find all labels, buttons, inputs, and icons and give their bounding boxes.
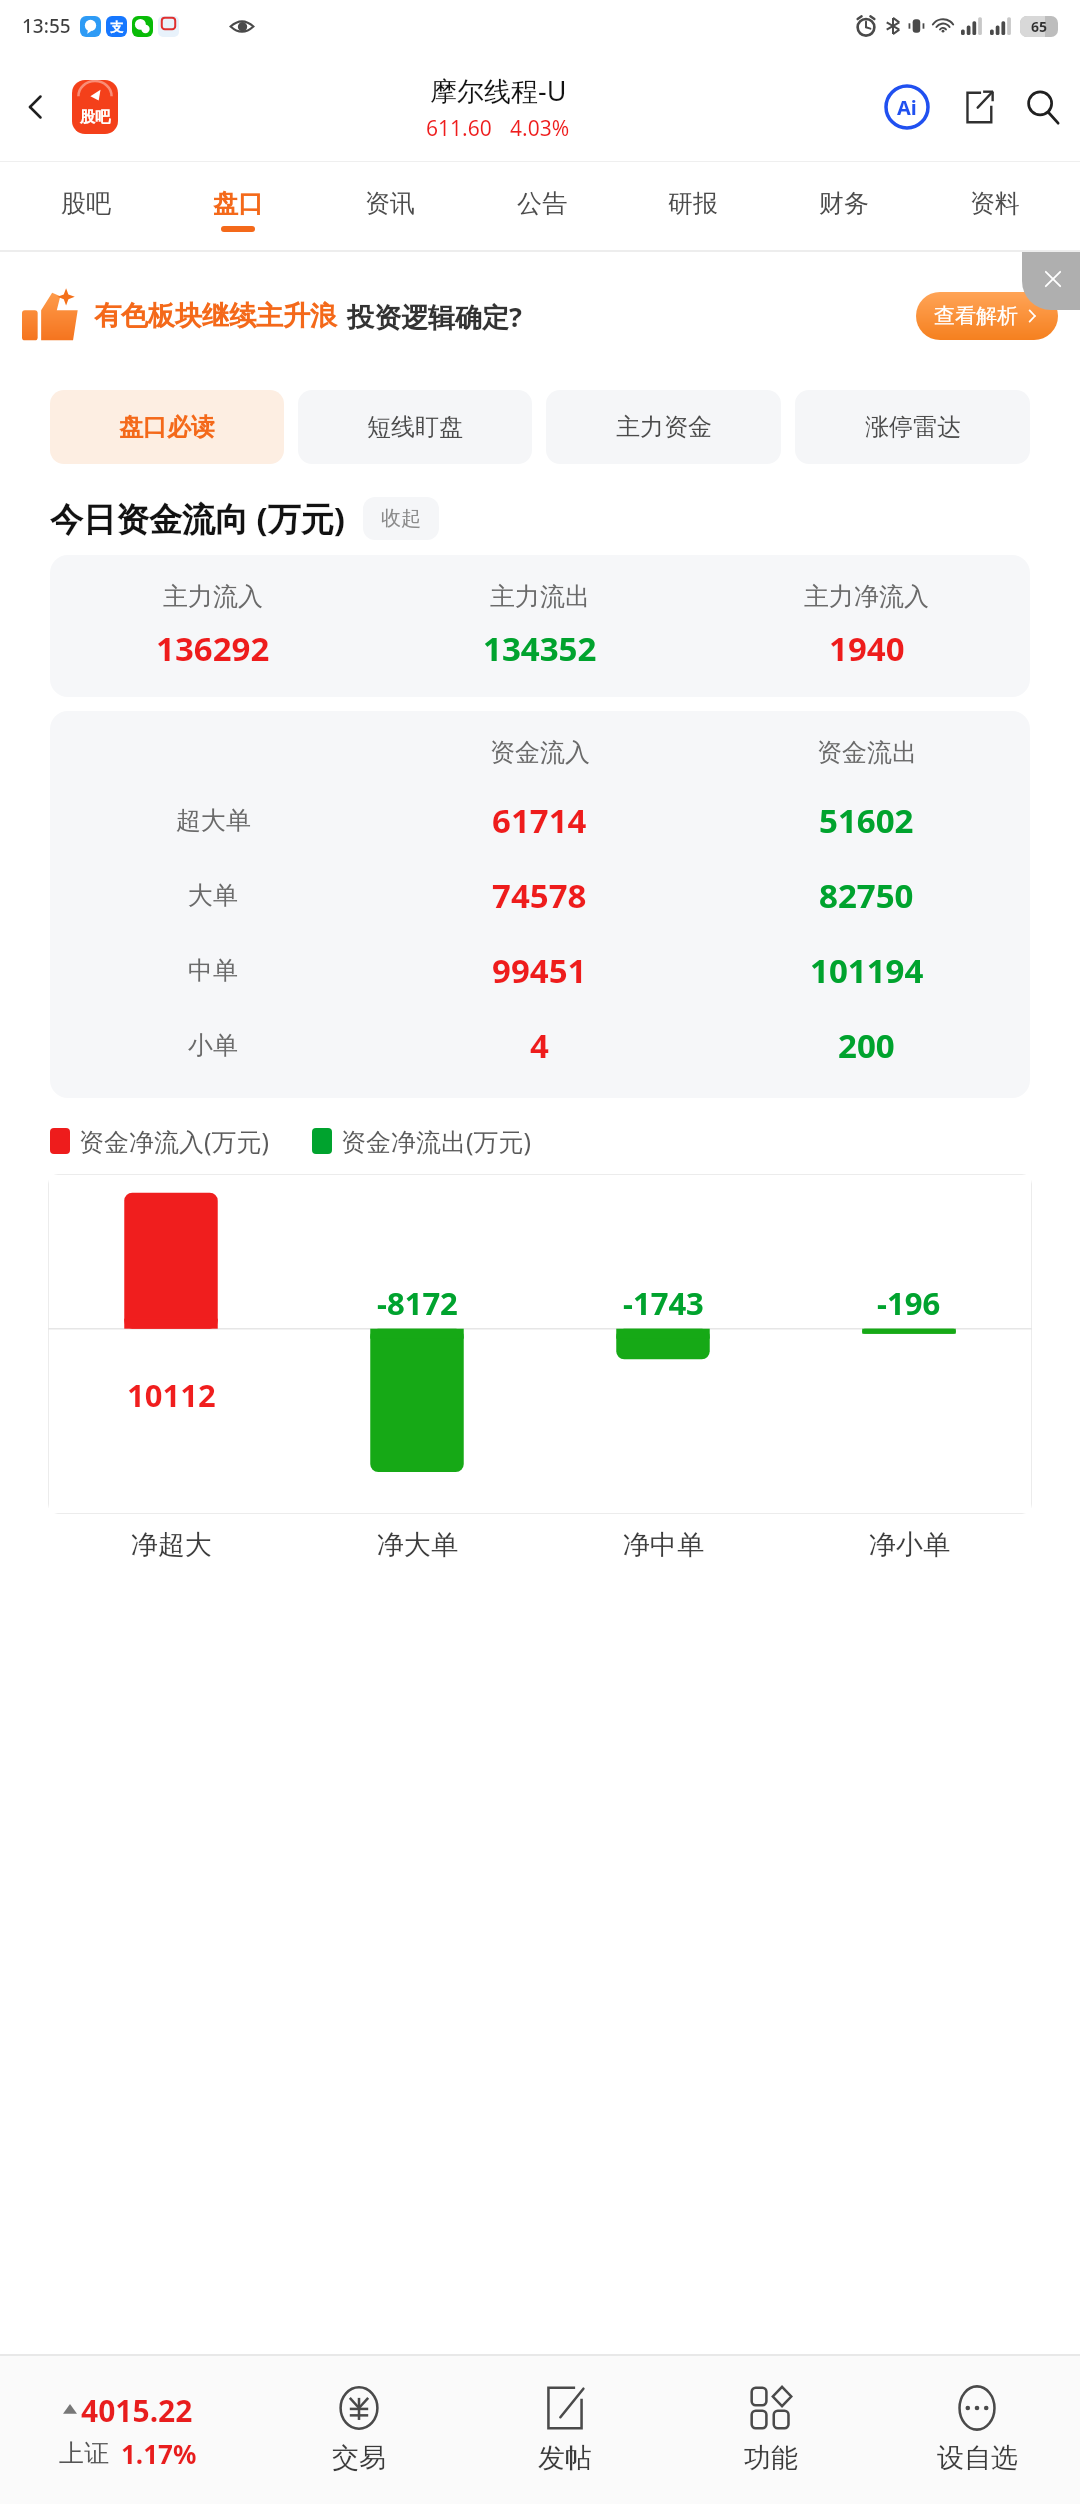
- staticText: 小单: [188, 1030, 238, 1061]
- staticText: 资金流入: [490, 737, 590, 768]
- staticText: 主力资金: [616, 412, 712, 442]
- staticText: 今日资金流向 (万元): [50, 496, 345, 541]
- staticText: 主力流出: [490, 581, 590, 612]
- staticText: 净大单: [377, 1528, 458, 1562]
- staticText: 研报: [668, 188, 718, 219]
- button[interactable]: 股吧: [72, 80, 118, 134]
- staticText: 10112: [127, 1374, 216, 1416]
- staticText: 134352: [483, 626, 597, 671]
- staticText: 短线盯盘: [367, 412, 463, 442]
- staticText: 收起: [381, 506, 421, 531]
- staticText: 财务: [819, 188, 869, 219]
- button[interactable]: 收起: [363, 497, 439, 540]
- staticText: 摩尔线程-U: [430, 72, 567, 109]
- staticText: 61714: [492, 798, 587, 843]
- staticText: 股吧: [80, 108, 110, 127]
- staticText: 611.60: [426, 114, 492, 143]
- button[interactable]: AI: [878, 78, 936, 136]
- staticText: 功能: [744, 2441, 798, 2475]
- staticText: 交易: [332, 2441, 386, 2475]
- staticText: 1940: [829, 626, 905, 671]
- staticText: 65: [1031, 17, 1048, 36]
- staticText: 设自选: [937, 2441, 1018, 2475]
- staticText: 发帖: [538, 2441, 592, 2475]
- staticText: 盘口必读: [119, 412, 215, 442]
- staticText: 200: [838, 1023, 895, 1068]
- button[interactable]: 功能: [668, 2356, 874, 2504]
- button[interactable]: 发帖: [462, 2356, 668, 2504]
- staticText: 主力流入: [163, 581, 263, 612]
- button[interactable]: 主力流入: [50, 555, 1030, 697]
- staticText: 主力净流入: [804, 581, 929, 612]
- staticText: 74578: [492, 873, 587, 918]
- button[interactable]: 财务: [768, 162, 919, 252]
- button[interactable]: 交易: [256, 2356, 462, 2504]
- button[interactable]: 涨停雷达: [795, 390, 1030, 464]
- staticText: 支: [110, 19, 123, 35]
- staticText: 有色板块继续主升浪: [94, 299, 337, 333]
- button[interactable]: 盘口必读: [50, 390, 284, 464]
- staticText: 上证: [59, 2438, 109, 2469]
- button[interactable]: 设自选: [874, 2356, 1080, 2504]
- button[interactable]: Close: [1022, 252, 1080, 310]
- staticText: 82750: [819, 873, 914, 918]
- button[interactable]: 公告: [466, 162, 617, 252]
- staticText: 资金净流入(万元): [79, 1124, 270, 1158]
- button[interactable]: 盘口: [162, 162, 314, 252]
- staticText: -8172: [377, 1282, 458, 1324]
- staticText: 大单: [188, 880, 238, 911]
- staticText: 13:55: [22, 13, 71, 39]
- button[interactable]: 股吧: [10, 162, 162, 252]
- staticText: 4015.22: [81, 2390, 193, 2431]
- staticText: 4: [530, 1023, 549, 1068]
- staticText: 投资逻辑确定?: [347, 298, 522, 335]
- staticText: 净小单: [869, 1528, 950, 1562]
- button[interactable]: 研报: [617, 162, 768, 252]
- button[interactable]: 查看解析: [916, 292, 1058, 340]
- staticText: 资料: [970, 188, 1020, 219]
- staticText: 涨停雷达: [865, 412, 961, 442]
- staticText: 资金流出: [817, 737, 917, 768]
- button[interactable]: Search: [1012, 76, 1074, 138]
- staticText: 盘口: [213, 188, 263, 219]
- staticText: 4.03%: [510, 114, 570, 143]
- staticText: 1.17%: [121, 2436, 197, 2471]
- staticText: 净超大: [131, 1528, 212, 1562]
- staticText: 136292: [156, 626, 270, 671]
- staticText: 51602: [819, 798, 914, 843]
- staticText: 股吧: [61, 188, 111, 219]
- staticText: 查看解析: [934, 303, 1018, 329]
- button[interactable]: 资讯: [314, 162, 466, 252]
- button[interactable]: Share: [948, 78, 1006, 136]
- staticText: -196: [877, 1282, 941, 1324]
- staticText: -1743: [623, 1282, 704, 1324]
- button[interactable]: Back: [0, 52, 72, 162]
- staticText: 99451: [492, 948, 587, 993]
- staticText: Ai: [897, 94, 917, 121]
- staticText: 资金净流出(万元): [341, 1124, 532, 1158]
- button[interactable]: 4015.22: [0, 2356, 256, 2504]
- button[interactable]: 资料: [919, 162, 1070, 252]
- staticText: 净中单: [623, 1528, 704, 1562]
- staticText: 101194: [810, 948, 924, 993]
- staticText: 资讯: [365, 188, 415, 219]
- button[interactable]: 资金流入: [50, 711, 1030, 1098]
- button[interactable]: 短线盯盘: [298, 390, 532, 464]
- staticText: 中单: [188, 955, 238, 986]
- button[interactable]: 主力资金: [546, 390, 781, 464]
- staticText: 超大单: [176, 805, 251, 836]
- staticText: 公告: [517, 188, 567, 219]
